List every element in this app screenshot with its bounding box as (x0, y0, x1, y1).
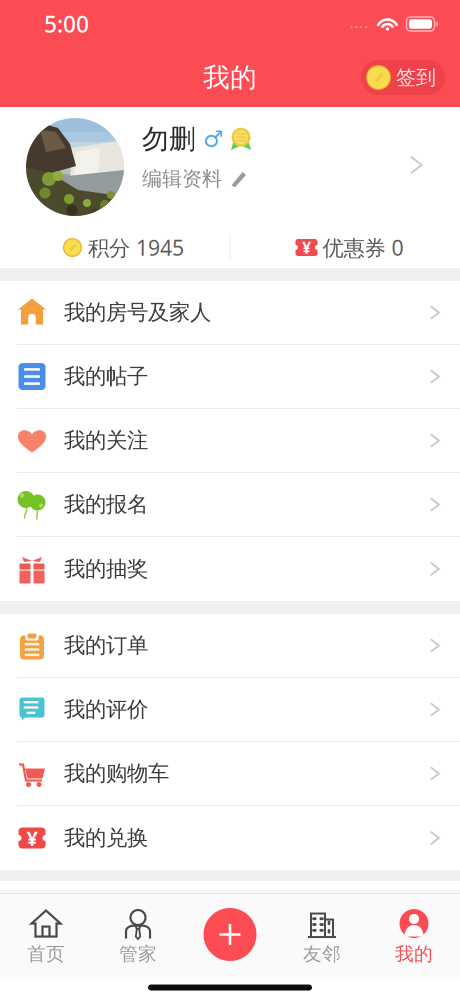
staticText: 优惠券 0 (322, 233, 403, 262)
button[interactable]: 管家 (92, 894, 184, 979)
staticText: 我的房号及家人 (64, 299, 211, 326)
staticText: 我的评价 (64, 696, 148, 723)
staticText: 友邻 (303, 942, 341, 965)
button[interactable]: 积分 1945 (0, 227, 229, 268)
button[interactable]: 我的评价 (0, 678, 460, 742)
staticText: 首页 (27, 942, 65, 965)
staticText: 我的 (203, 61, 257, 94)
staticText: 我的购物车 (64, 760, 169, 787)
staticText: 我的关注 (64, 427, 148, 454)
button[interactable]: 我的帖子 (0, 345, 460, 409)
button[interactable]: 我的购物车 (0, 742, 460, 806)
staticText: 勿删 (142, 123, 196, 156)
staticText: 我的订单 (64, 632, 148, 659)
staticText: 积分 1945 (88, 233, 184, 262)
button[interactable]: 首页 (0, 894, 92, 979)
button[interactable]: 我的报名 (0, 473, 460, 537)
staticText: 管家 (119, 942, 157, 965)
staticText: ♂ (203, 126, 223, 152)
button[interactable]: 我的 (368, 894, 460, 979)
button[interactable]: 勿删 (0, 107, 460, 227)
staticText: 我的报名 (64, 491, 148, 518)
button[interactable]: ¥ (0, 806, 460, 870)
staticText: 5:00 (44, 9, 89, 39)
staticText: 编辑资料 (142, 167, 222, 191)
button[interactable]: Add (203, 908, 256, 961)
staticText: 我的兑换 (64, 825, 148, 851)
button[interactable]: 友邻 (276, 894, 368, 979)
button[interactable]: 我的订单 (0, 614, 460, 678)
staticText: 我的抽奖 (64, 556, 148, 582)
button[interactable]: ¥ (230, 227, 460, 268)
button[interactable]: 我的房号及家人 (0, 281, 460, 345)
staticText: 签到 (396, 65, 436, 90)
button[interactable]: 我的关注 (0, 409, 460, 473)
button[interactable]: 我的抽奖 (0, 537, 460, 601)
staticText: ¥ (302, 237, 311, 258)
button[interactable]: 签到 (361, 60, 445, 95)
staticText: ¥ (26, 825, 37, 851)
staticText: 我的帖子 (64, 363, 148, 390)
staticText: 我的 (395, 942, 433, 965)
